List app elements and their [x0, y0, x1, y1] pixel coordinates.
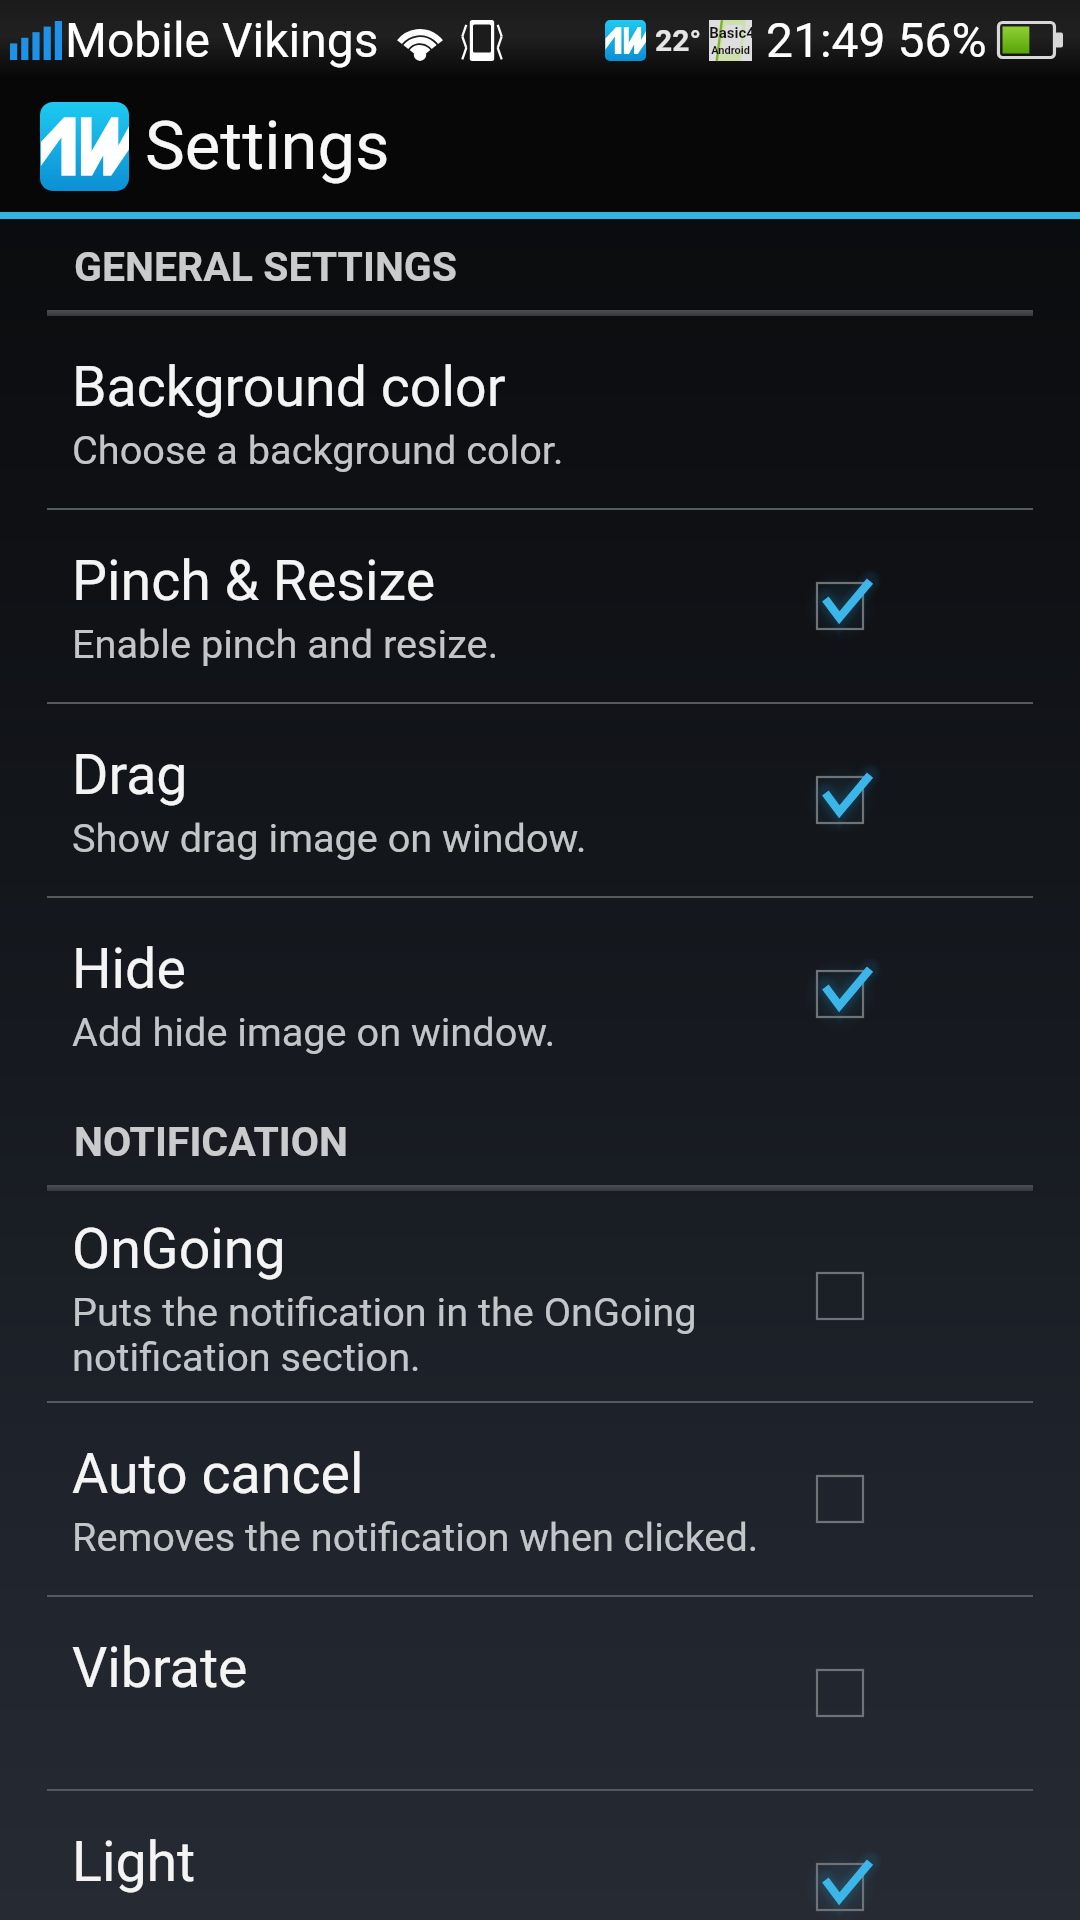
staticText: Hide [72, 937, 186, 1002]
other: Unchecked [792, 1451, 888, 1547]
other: Checked [792, 1839, 888, 1920]
button[interactable]: Hide [0, 898, 1080, 1090]
staticText: Settings [145, 107, 390, 186]
button[interactable]: Vibrate [0, 1597, 1080, 1789]
button[interactable]: OnGoing [0, 1191, 1080, 1401]
staticText: 22° [655, 23, 702, 58]
staticText: 21:49 56% [766, 12, 987, 68]
staticText: Background color [72, 355, 506, 420]
staticText: Pinch & Resize [72, 549, 436, 614]
staticText: Puts the notification in the OnGoing not… [72, 1289, 697, 1380]
button[interactable]: Drag [0, 704, 1080, 896]
staticText: Basic4 [709, 24, 752, 42]
staticText: NOTIFICATION [74, 1118, 349, 1166]
staticText: Light [72, 1830, 196, 1895]
staticText: Drag [72, 743, 188, 808]
other: Checked [792, 946, 888, 1042]
button[interactable]: Auto cancel [0, 1403, 1080, 1595]
other: Unchecked [792, 1248, 888, 1344]
staticText: Choose a background color. [72, 427, 564, 474]
staticText: Auto cancel [72, 1442, 364, 1507]
other: Checked [792, 752, 888, 848]
staticText: Android [711, 44, 750, 57]
button[interactable]: Light [0, 1791, 1080, 1920]
staticText: Enable pinch and resize. [72, 621, 499, 668]
staticText: GENERAL SETTINGS [74, 243, 457, 291]
other: Checked [792, 558, 888, 654]
staticText: Removes the notification when clicked. [72, 1514, 759, 1561]
staticText: Vibrate [72, 1636, 248, 1701]
staticText: Show drag image on window. [72, 815, 587, 862]
staticText: OnGoing [72, 1217, 286, 1282]
other: Unchecked [792, 1645, 888, 1741]
button[interactable]: Pinch & Resize [0, 510, 1080, 702]
staticText: Add hide image on window. [72, 1009, 556, 1056]
staticText: Mobile Vikings [65, 12, 379, 68]
button[interactable]: Background color [0, 316, 1080, 508]
